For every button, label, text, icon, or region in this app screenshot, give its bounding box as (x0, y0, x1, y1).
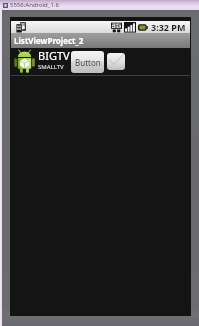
button[interactable]: Checkbox (107, 53, 125, 70)
staticText: SMALLTV (38, 63, 64, 71)
button[interactable]: Button (71, 51, 104, 73)
button[interactable]: BIGTV (11, 48, 190, 75)
staticText: ListViewProject_2 (14, 35, 84, 46)
staticText: 5556:Android_1.6 (10, 1, 59, 9)
other: Notification (16, 22, 26, 33)
staticText: 3:32 PM (151, 21, 186, 33)
staticText: Button (75, 57, 101, 68)
staticText: BIGTV (38, 48, 70, 63)
